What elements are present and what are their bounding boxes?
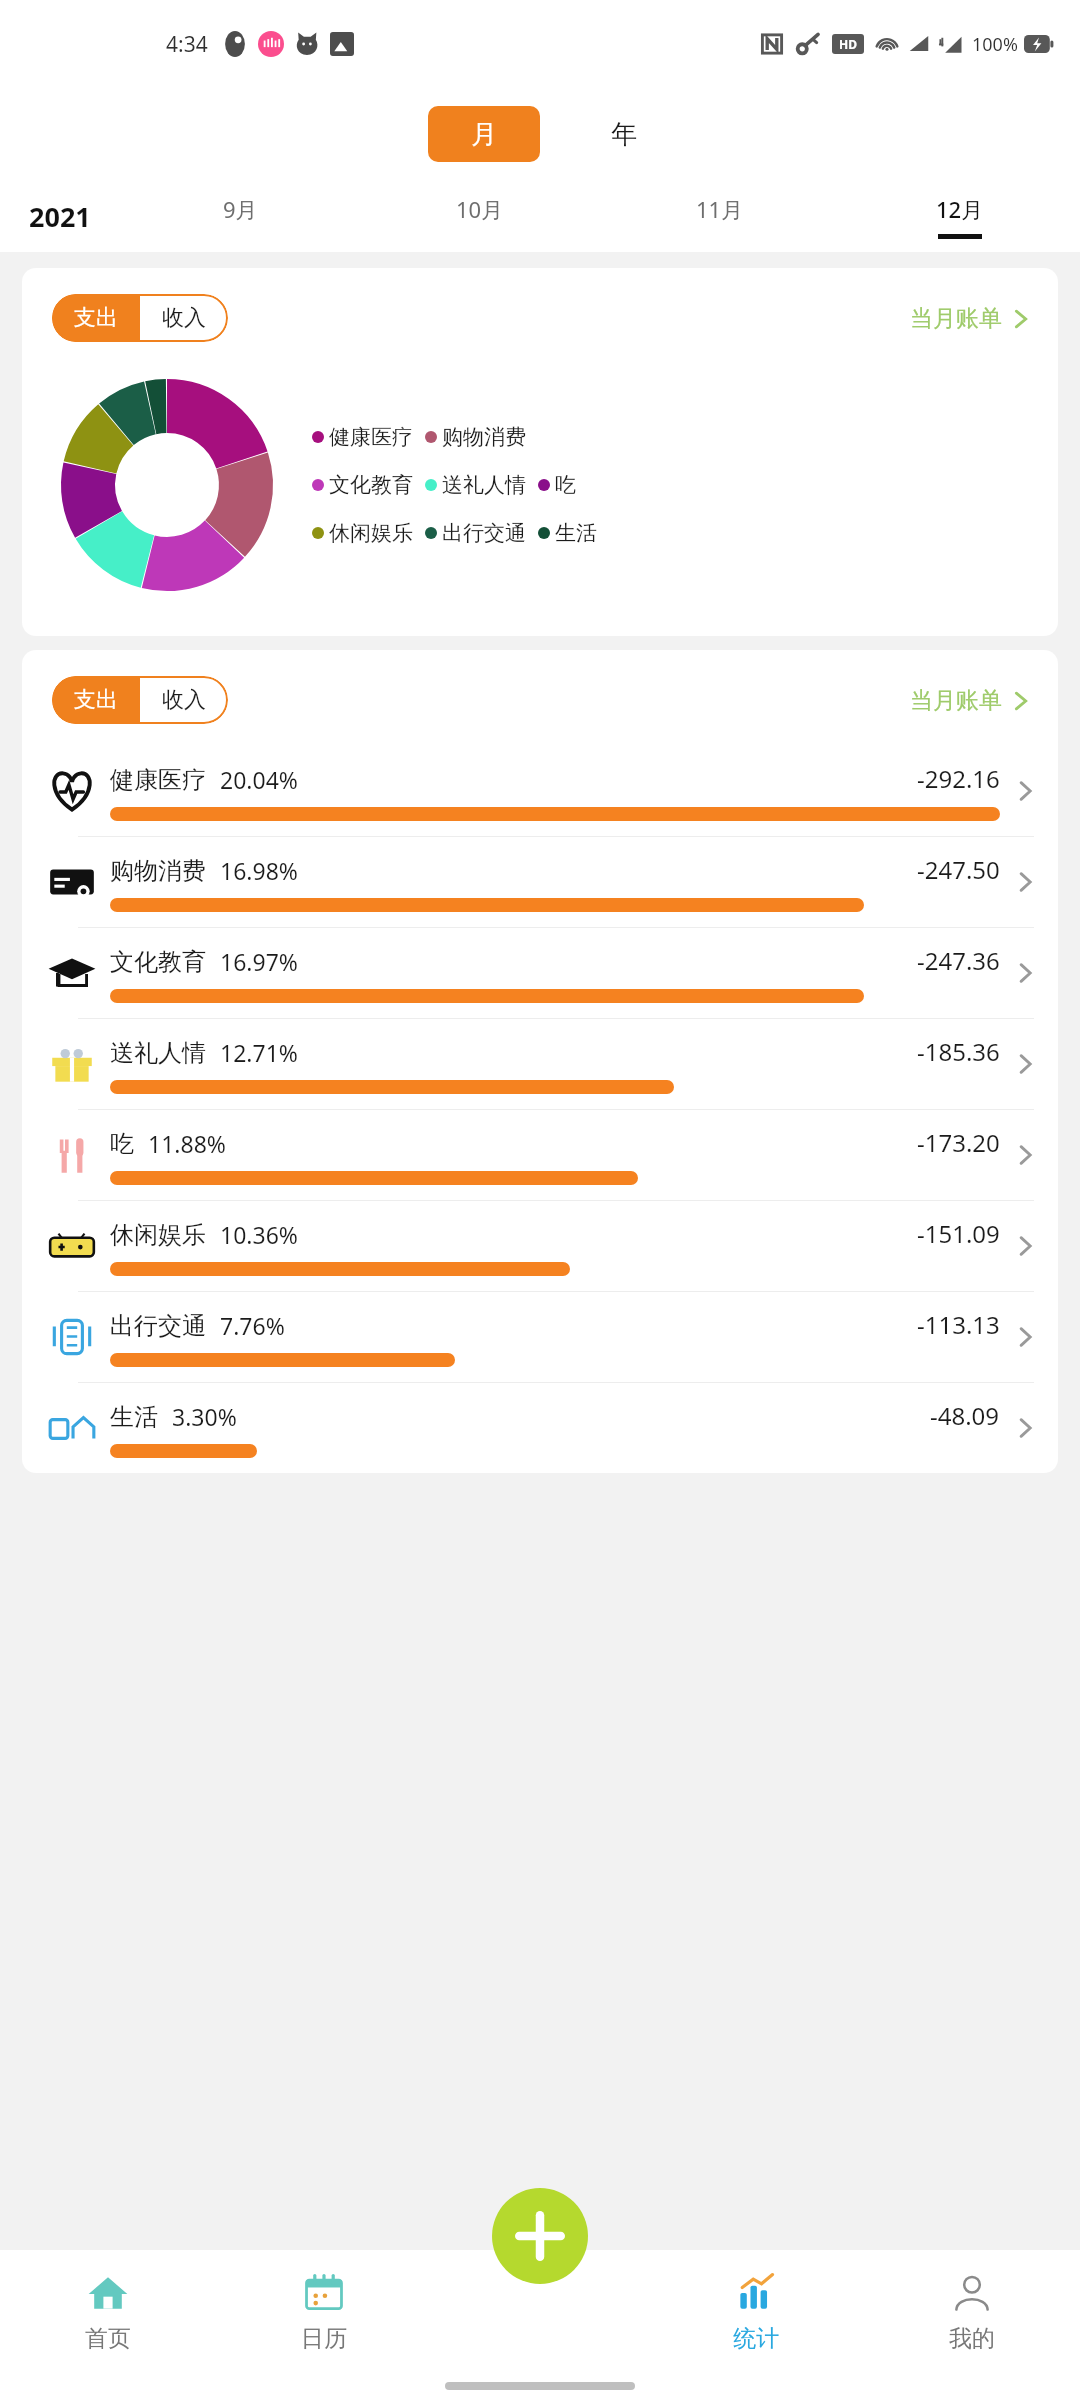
staticText: 3.30%	[172, 1401, 237, 1432]
staticText: -113.13	[917, 1308, 1000, 1341]
staticText: 4:34	[166, 30, 208, 59]
button[interactable]: 送礼人情	[22, 1019, 1058, 1109]
button[interactable]: 收入	[140, 294, 228, 342]
other: More	[1012, 960, 1038, 986]
staticText: 年	[611, 118, 637, 151]
staticText: 7.76%	[220, 1310, 285, 1341]
button[interactable]: 健康医疗	[22, 746, 1058, 836]
staticText: 休闲娱乐	[329, 520, 413, 546]
staticText: -247.50	[917, 853, 1000, 886]
button[interactable]: 出行交通	[22, 1292, 1058, 1382]
staticText: 12月	[936, 194, 984, 224]
button[interactable]: 首页	[0, 2250, 216, 2372]
staticText: 收入	[162, 304, 206, 332]
button[interactable]: 当月账单	[910, 304, 1034, 333]
other: More	[1012, 1233, 1038, 1259]
staticText: 购物消费	[110, 856, 206, 886]
button[interactable]: 年	[596, 106, 652, 162]
button[interactable]: 生活	[22, 1383, 1058, 1473]
staticText: 16.97%	[220, 946, 298, 977]
staticText: -173.20	[917, 1126, 1000, 1159]
button[interactable]: 11月	[600, 180, 840, 252]
button[interactable]: 我的	[864, 2250, 1080, 2372]
other: More	[1012, 1142, 1038, 1168]
staticText: -48.09	[930, 1399, 1000, 1432]
staticText: -185.36	[917, 1035, 1000, 1068]
staticText: 11月	[696, 194, 744, 224]
staticText: 20.04%	[220, 764, 298, 795]
button[interactable]: 12月	[840, 180, 1080, 252]
staticText: -292.16	[917, 762, 1000, 795]
button[interactable]: Add	[492, 2188, 588, 2284]
button[interactable]: 吃	[22, 1110, 1058, 1200]
staticText: 出行交通	[442, 520, 526, 546]
button[interactable]: 日历	[216, 2250, 432, 2372]
staticText: 2021	[29, 198, 91, 235]
staticText: 出行交通	[110, 1311, 206, 1341]
other: More	[1012, 1324, 1038, 1350]
button[interactable]: 当月账单	[910, 686, 1034, 715]
staticText: 收入	[162, 686, 206, 714]
staticText: 休闲娱乐	[110, 1220, 206, 1250]
button[interactable]: 文化教育	[22, 928, 1058, 1018]
button[interactable]: 收入	[140, 676, 228, 724]
other: More	[1012, 869, 1038, 895]
staticText: 首页	[85, 2324, 131, 2353]
staticText: 日历	[301, 2324, 347, 2353]
staticText: 11.88%	[148, 1128, 226, 1159]
staticText: 100%	[972, 32, 1018, 57]
staticText: 吃	[110, 1129, 134, 1159]
staticText: 统计	[733, 2324, 779, 2353]
staticText: 支出	[74, 304, 118, 332]
staticText: 16.98%	[220, 855, 298, 886]
other: More	[1012, 1415, 1038, 1441]
button[interactable]: 休闲娱乐	[22, 1201, 1058, 1291]
staticText: 月	[471, 118, 497, 151]
staticText: HD	[839, 36, 857, 52]
staticText: 10.36%	[220, 1219, 298, 1250]
staticText: 健康医疗	[329, 424, 413, 450]
staticText: 9月	[223, 194, 258, 224]
staticText: 健康医疗	[110, 765, 206, 795]
button[interactable]: 统计	[648, 2250, 864, 2372]
staticText: 10月	[456, 194, 504, 224]
button[interactable]: 月	[428, 106, 540, 162]
staticText: 当月账单	[910, 304, 1002, 333]
button[interactable]: 支出	[52, 676, 140, 724]
button[interactable]: 2021	[0, 180, 120, 252]
staticText: 文化教育	[329, 472, 413, 498]
staticText: -247.36	[917, 944, 1000, 977]
staticText: 支出	[74, 686, 118, 714]
staticText: 我的	[949, 2324, 995, 2353]
staticText: 当月账单	[910, 686, 1002, 715]
staticText: 吃	[555, 472, 576, 498]
other: More	[1012, 778, 1038, 804]
staticText: 12.71%	[220, 1037, 298, 1068]
staticText: 送礼人情	[110, 1038, 206, 1068]
staticText: 文化教育	[110, 947, 206, 977]
other: More	[1012, 1051, 1038, 1077]
button[interactable]: 支出	[52, 294, 140, 342]
button[interactable]: 9月	[120, 180, 360, 252]
staticText: 生活	[110, 1402, 158, 1432]
staticText: -151.09	[917, 1217, 1000, 1250]
staticText: 生活	[555, 520, 597, 546]
button[interactable]: 购物消费	[22, 837, 1058, 927]
staticText: 购物消费	[442, 424, 526, 450]
staticText: 送礼人情	[442, 472, 526, 498]
button[interactable]: 10月	[360, 180, 600, 252]
